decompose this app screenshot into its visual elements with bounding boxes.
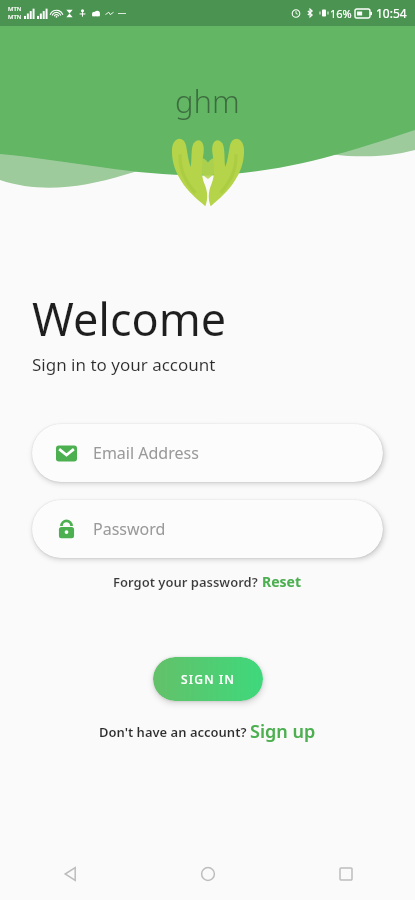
staticText: ghm xyxy=(175,80,240,122)
button[interactable]: Email Address xyxy=(32,424,383,482)
staticText: MTN xyxy=(8,13,22,21)
staticText: Password xyxy=(93,518,166,540)
staticText: Email Address xyxy=(93,442,199,464)
staticText: Don't have an account? xyxy=(99,723,250,741)
staticText: 16% xyxy=(330,6,352,21)
staticText: Welcome xyxy=(32,288,227,349)
staticText: Sign up xyxy=(250,719,316,744)
button[interactable]: Home xyxy=(139,848,277,900)
button[interactable]: Recents xyxy=(277,848,415,900)
staticText: 10:54 xyxy=(376,5,407,21)
button[interactable]: Reset xyxy=(262,572,302,591)
staticText: Reset xyxy=(262,572,302,591)
button[interactable]: Back xyxy=(0,848,139,900)
button[interactable]: SIGN IN xyxy=(153,657,263,701)
button[interactable]: Sign up xyxy=(250,719,316,744)
button[interactable]: Password xyxy=(32,500,383,558)
staticText: Forgot your password? xyxy=(113,573,262,591)
staticText: Sign in to your account xyxy=(32,353,216,376)
staticText: SIGN IN xyxy=(181,671,235,687)
staticText: MTN xyxy=(8,5,22,13)
